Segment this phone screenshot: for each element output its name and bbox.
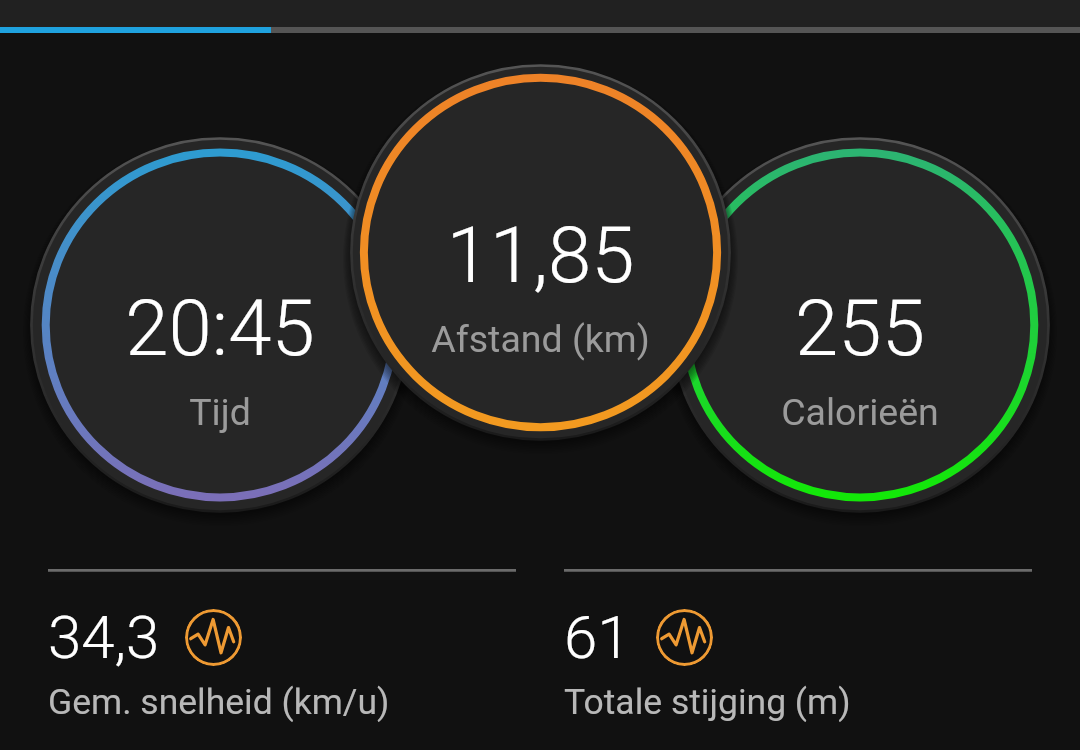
button[interactable]: 61 (564, 602, 1032, 732)
staticText: 20:45 (125, 283, 315, 374)
button[interactable]: 11,85 (340, 52, 741, 453)
staticText: 11,85 (446, 210, 635, 301)
button[interactable]: 255 (660, 125, 1060, 525)
staticText: 61 (564, 602, 631, 672)
staticText: Totale stijging (m) (564, 681, 851, 723)
button[interactable]: 34,3 (48, 602, 516, 732)
staticText: Afstand (km) (431, 317, 650, 361)
staticText: 34,3 (48, 602, 160, 672)
staticText: 255 (795, 283, 925, 374)
staticText: Tijd (189, 390, 251, 434)
button[interactable]: Average speed (185, 609, 242, 666)
staticText: Calorieën (781, 390, 939, 434)
staticText: Gem. snelheid (km/u) (48, 681, 390, 723)
button[interactable]: Total ascent (656, 609, 713, 666)
button[interactable]: 20:45 (20, 125, 420, 525)
